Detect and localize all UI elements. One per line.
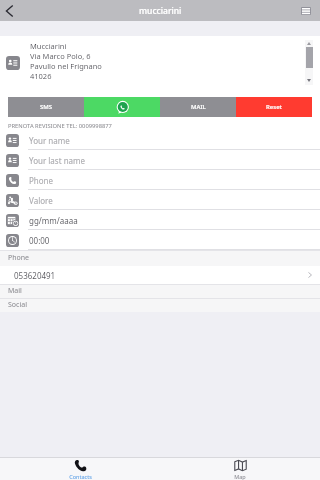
button[interactable]: Map bbox=[160, 458, 320, 480]
button[interactable]: WhatsApp bbox=[84, 97, 160, 117]
staticText: SMS bbox=[40, 103, 53, 111]
staticText: 053620491 bbox=[14, 270, 56, 281]
staticText: PRENOTA REVISIONE TEL: 0009998877 bbox=[8, 122, 112, 130]
button[interactable]: Menu bbox=[294, 0, 320, 21]
button[interactable]: Reset bbox=[236, 97, 312, 117]
staticText: Map bbox=[234, 473, 246, 480]
staticText: Valore bbox=[29, 195, 53, 206]
staticText: Phone bbox=[29, 175, 54, 186]
staticText: Pavullo nel Frignano bbox=[30, 61, 102, 71]
staticText: Via Marco Polo, 6 bbox=[30, 51, 91, 61]
button[interactable]: 053620491 bbox=[0, 266, 320, 284]
staticText: gg/mm/aaaa bbox=[29, 215, 78, 226]
button[interactable]: MAIL bbox=[160, 97, 236, 117]
staticText: MAIL bbox=[191, 103, 206, 111]
staticText: Phone bbox=[8, 253, 30, 263]
button[interactable]: Back bbox=[0, 0, 30, 21]
staticText: 41026 bbox=[30, 71, 52, 81]
staticText: Mucciarini bbox=[30, 41, 67, 51]
staticText: Reset bbox=[266, 103, 282, 111]
staticText: Mail bbox=[8, 286, 22, 296]
staticText: Your last name bbox=[29, 155, 86, 166]
staticText: Your name bbox=[29, 135, 70, 146]
button[interactable]: Contacts bbox=[0, 458, 160, 480]
button[interactable]: SMS bbox=[8, 97, 84, 117]
staticText: 00:00 bbox=[29, 235, 50, 246]
staticText: Contacts bbox=[69, 473, 92, 480]
staticText: Social bbox=[8, 300, 27, 310]
staticText: mucciarini bbox=[139, 5, 182, 17]
